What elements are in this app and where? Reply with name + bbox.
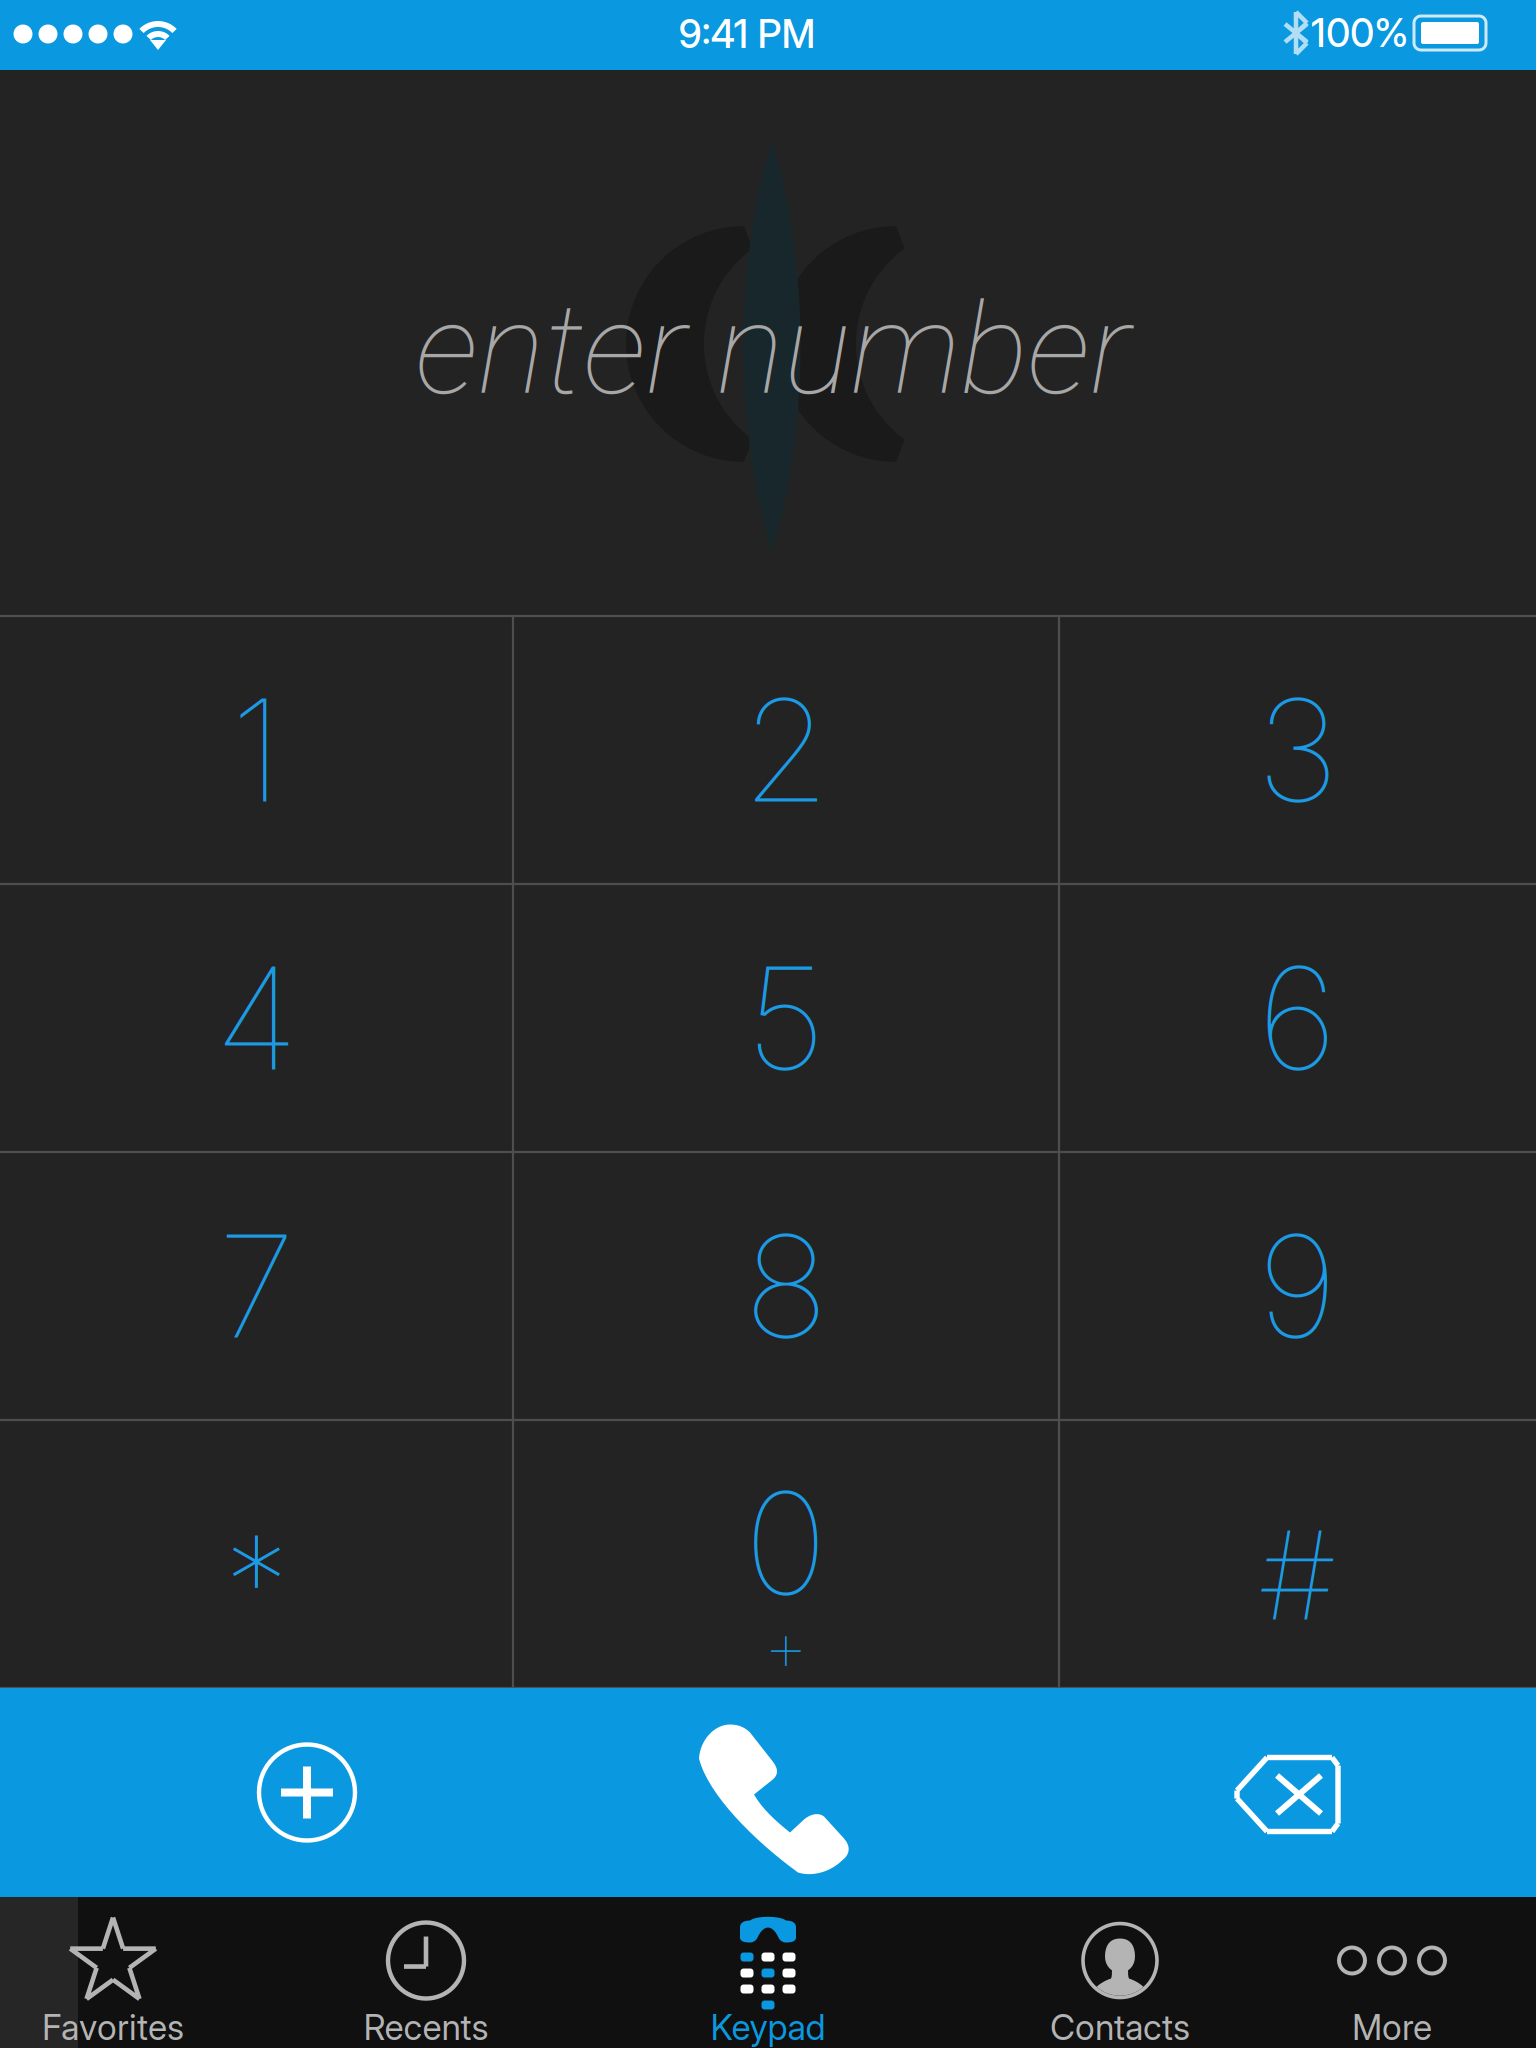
- button[interactable]: #: [1060, 1421, 1535, 1687]
- staticText: 0: [744, 1457, 828, 1628]
- staticText: #: [1258, 1501, 1336, 1649]
- staticText: Favorites: [42, 2006, 184, 2048]
- staticText: Recents: [363, 2006, 488, 2048]
- staticText: *: [224, 1505, 288, 1659]
- button[interactable]: 8: [514, 1153, 1058, 1419]
- staticText: 4: [214, 932, 298, 1103]
- button[interactable]: 6: [1060, 885, 1535, 1151]
- staticText: 8: [744, 1200, 828, 1371]
- staticText: 100%: [1311, 10, 1409, 56]
- button[interactable]: 0: [514, 1421, 1058, 1687]
- staticText: Keypad: [710, 2006, 825, 2048]
- button[interactable]: 4: [1, 885, 512, 1151]
- staticText: +: [763, 1601, 809, 1688]
- button[interactable]: Call: [623, 1696, 923, 1905]
- button[interactable]: *: [1, 1421, 512, 1687]
- staticText: 3: [1256, 664, 1338, 835]
- staticText: 7: [218, 1200, 295, 1371]
- staticText: Contacts: [1050, 2006, 1190, 2048]
- button[interactable]: More: [1252, 1906, 1532, 2048]
- staticText: enter number: [415, 276, 1130, 424]
- button[interactable]: Delete: [1088, 1691, 1488, 1900]
- staticText: More: [1352, 2006, 1432, 2048]
- button[interactable]: 5: [514, 885, 1058, 1151]
- button[interactable]: Favorites: [0, 1906, 253, 2048]
- button[interactable]: Recents: [286, 1906, 566, 2048]
- staticText: 9:41 PM: [678, 11, 815, 57]
- button[interactable]: Keypad: [628, 1906, 908, 2048]
- staticText: 9: [1257, 1200, 1337, 1371]
- staticText: 1: [230, 664, 282, 835]
- button[interactable]: Add number: [107, 1688, 507, 1897]
- button[interactable]: 2: [514, 617, 1058, 883]
- button[interactable]: 9: [1060, 1153, 1535, 1419]
- staticText: 6: [1257, 932, 1337, 1103]
- button[interactable]: Contacts: [980, 1906, 1260, 2048]
- button[interactable]: 1: [1, 617, 512, 883]
- staticText: 2: [742, 664, 830, 835]
- button[interactable]: 3: [1060, 617, 1535, 883]
- staticText: 5: [746, 932, 826, 1103]
- button[interactable]: 7: [1, 1153, 512, 1419]
